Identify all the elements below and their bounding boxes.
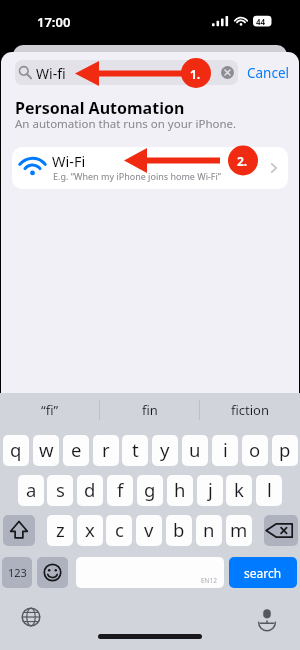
staticText: 1. [190, 66, 201, 82]
staticText: search [244, 565, 282, 581]
staticText: q [10, 437, 22, 462]
button[interactable]: search [229, 557, 297, 588]
button[interactable]: y [152, 435, 178, 466]
staticText: f [117, 477, 124, 502]
staticText: i [223, 437, 228, 462]
staticText: d [84, 477, 96, 502]
staticText: z [56, 517, 65, 542]
staticText: EN12 [201, 576, 217, 585]
button[interactable]: t [122, 435, 148, 466]
staticText: fiction [231, 401, 270, 419]
staticText: 2. [237, 153, 248, 169]
staticText: 123 [8, 565, 27, 580]
button[interactable]: m [226, 515, 252, 546]
button[interactable]: Wi-fi [15, 60, 238, 85]
button[interactable]: n [196, 515, 222, 546]
staticText: h [174, 477, 186, 502]
staticText: p [279, 437, 291, 462]
staticText: y [160, 437, 170, 462]
button[interactable]: Switch keyboard [21, 607, 41, 627]
button[interactable]: e [63, 435, 89, 466]
button[interactable]: k [226, 475, 252, 506]
staticText: m [230, 517, 248, 542]
button[interactable]: EN12 [76, 557, 224, 588]
staticText: w [39, 437, 54, 462]
button[interactable]: Shift [3, 515, 35, 546]
button[interactable]: c [106, 515, 132, 546]
button[interactable]: i [212, 435, 238, 466]
staticText: a [26, 477, 37, 502]
staticText: c [115, 517, 124, 542]
button[interactable]: w [33, 435, 59, 466]
button[interactable]: Cancel [244, 60, 292, 85]
staticText: l [267, 477, 272, 502]
button[interactable]: u [182, 435, 208, 466]
button[interactable]: q [3, 435, 29, 466]
button[interactable]: p [272, 435, 298, 466]
button[interactable]: x [77, 515, 103, 546]
staticText: v [144, 517, 154, 542]
staticText: j [208, 477, 213, 502]
staticText: Cancel [247, 64, 290, 82]
button[interactable]: d [77, 475, 103, 506]
button[interactable]: Clear text [221, 66, 234, 79]
staticText: fin [142, 401, 158, 419]
staticText: k [234, 477, 244, 502]
staticText: t [132, 437, 139, 462]
button[interactable]: Backspace [264, 515, 298, 546]
staticText: An automation that runs on your iPhone. [15, 116, 237, 132]
button[interactable]: v [136, 515, 162, 546]
button[interactable]: r [93, 435, 119, 466]
staticText: e [71, 437, 82, 462]
button[interactable]: Wi-Fi [12, 147, 288, 189]
staticText: n [203, 517, 215, 542]
staticText: r [102, 437, 110, 462]
staticText: g [144, 477, 156, 502]
button[interactable]: fiction [200, 394, 300, 426]
staticText: 44 [256, 16, 266, 27]
button[interactable]: f [107, 475, 133, 506]
button[interactable]: o [242, 435, 268, 466]
staticText: 17:00 [37, 13, 71, 31]
staticText: Wi-fi [36, 64, 66, 83]
button[interactable]: Emoji [37, 557, 68, 588]
button[interactable]: s [47, 475, 73, 506]
staticText: o [249, 437, 261, 462]
staticText: x [85, 517, 95, 542]
staticText: s [56, 477, 65, 502]
button[interactable]: j [197, 475, 223, 506]
staticText: E.g. “When my iPhone joins home Wi-Fi” [53, 170, 222, 182]
staticText: b [173, 517, 185, 542]
staticText: Personal Automation [15, 97, 185, 119]
button[interactable]: h [167, 475, 193, 506]
button[interactable]: z [47, 515, 73, 546]
button[interactable]: b [166, 515, 192, 546]
button[interactable]: 123 [2, 557, 32, 588]
staticText: u [189, 437, 201, 462]
staticText: “fi” [41, 401, 59, 419]
button[interactable]: fin [100, 394, 200, 426]
button[interactable]: g [137, 475, 163, 506]
staticText: Wi-Fi [52, 151, 86, 171]
button[interactable]: “fi” [0, 394, 100, 426]
button[interactable]: a [18, 475, 44, 506]
button[interactable]: Dictate [257, 606, 277, 626]
button[interactable]: l [256, 475, 282, 506]
